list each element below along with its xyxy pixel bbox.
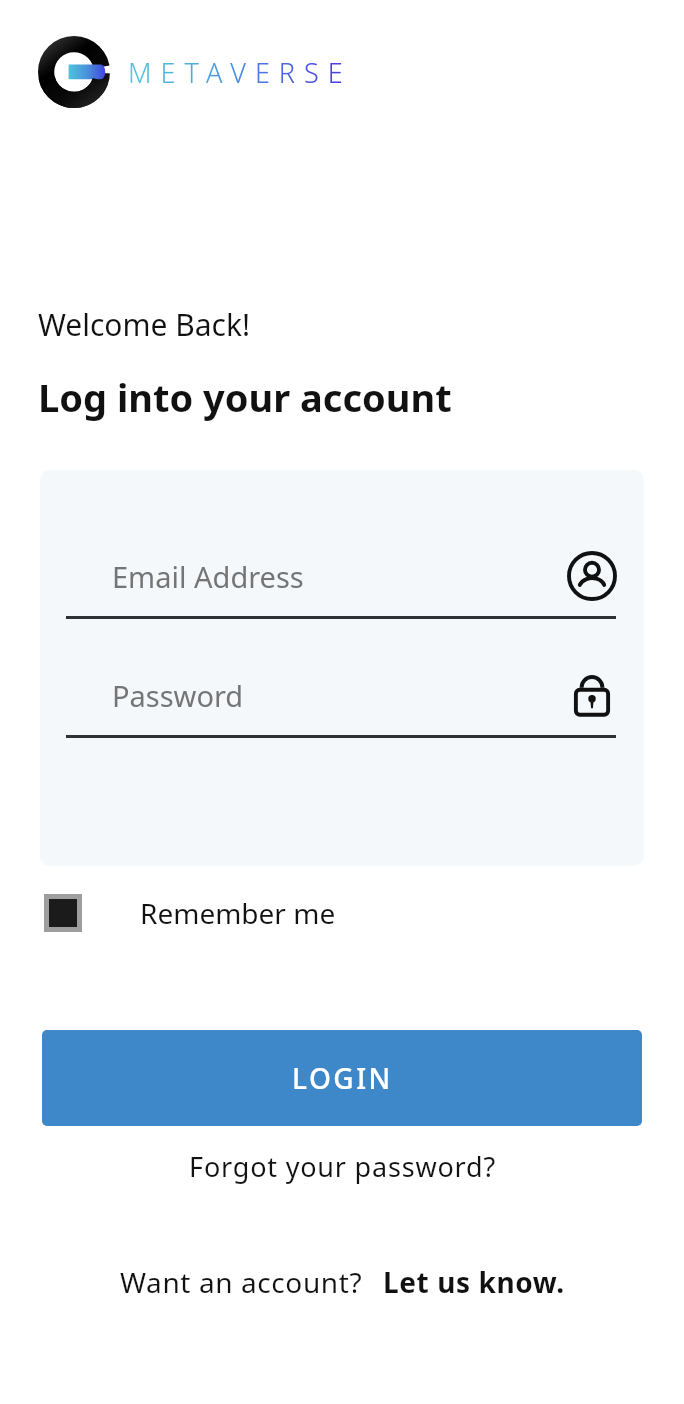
button[interactable]: Forgot your password? [0, 1148, 684, 1185]
staticText: Email Address [112, 557, 566, 596]
staticText: Log into your account [38, 371, 452, 423]
button[interactable]: Password [66, 661, 618, 738]
button[interactable]: Let us know. [383, 1263, 565, 1301]
staticText: Welcome Back! [38, 304, 251, 345]
staticText: Password [112, 676, 566, 715]
other: Account [566, 550, 618, 602]
other: Password [566, 669, 618, 721]
staticText: Let us know. [383, 1263, 565, 1301]
button[interactable]: Email Address [66, 542, 618, 619]
staticText: Remember me [140, 894, 336, 932]
button[interactable]: Remember me [44, 882, 336, 944]
button[interactable]: LOGIN [42, 1030, 642, 1126]
staticText: LOGIN [292, 1059, 393, 1097]
staticText: METAVERSE [128, 54, 352, 91]
staticText: Want an account? [120, 1263, 363, 1301]
staticText: Forgot your password? [189, 1148, 496, 1185]
